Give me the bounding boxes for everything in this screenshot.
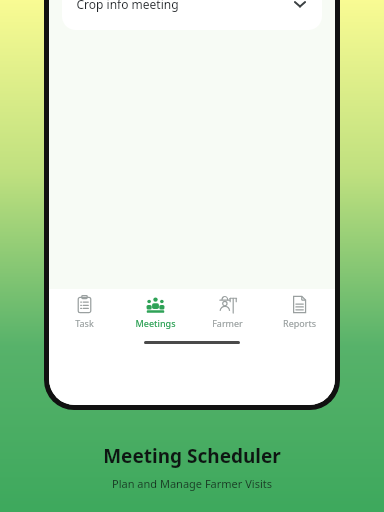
- staticText: Crop info meeting: [76, 0, 179, 12]
- button[interactable]: Crop info meeting: [62, 0, 322, 30]
- staticText: Reports: [283, 317, 316, 329]
- button[interactable]: Meetings: [120, 295, 191, 329]
- button[interactable]: Task: [49, 295, 120, 329]
- staticText: Task: [75, 317, 94, 329]
- button[interactable]: Farmer: [191, 295, 263, 329]
- staticText: Meetings: [135, 317, 176, 329]
- button[interactable]: Reports: [263, 295, 335, 329]
- staticText: Plan and Manage Farmer Visits: [112, 476, 272, 491]
- staticText: Farmer: [212, 317, 243, 329]
- staticText: Meeting Scheduler: [103, 443, 281, 469]
